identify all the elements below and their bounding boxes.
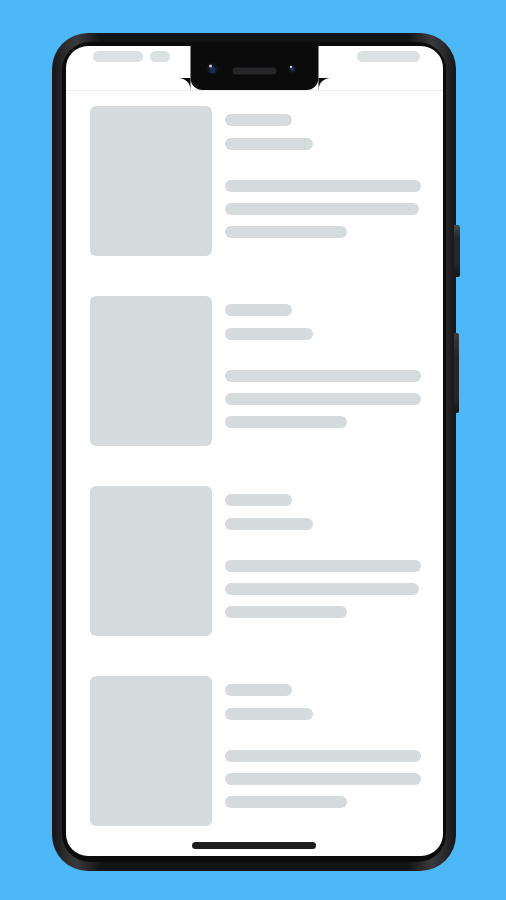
button[interactable] <box>66 486 443 636</box>
button[interactable]: Volume <box>454 333 459 413</box>
button[interactable] <box>66 676 443 826</box>
button[interactable]: Power <box>454 225 460 277</box>
button[interactable] <box>66 296 443 446</box>
button[interactable] <box>66 106 443 256</box>
